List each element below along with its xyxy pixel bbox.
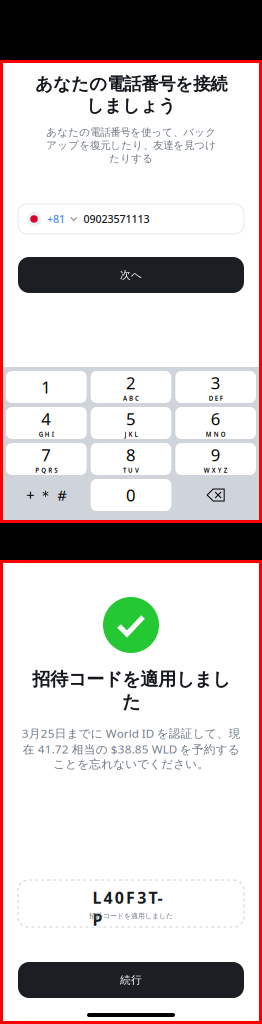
staticText: 6: [211, 407, 221, 430]
button[interactable]: 6: [175, 407, 256, 439]
staticText: 2: [126, 371, 136, 394]
button[interactable]: 9: [175, 443, 256, 475]
staticText: D E F: [209, 394, 223, 403]
staticText: 次へ: [120, 268, 142, 282]
staticText: 3月25日までに World ID を認証して、現在 41.72 相当の $38…: [21, 725, 240, 772]
staticText: 0: [126, 484, 136, 506]
staticText: 9: [211, 443, 221, 466]
staticText: A B C: [123, 394, 139, 403]
staticText: 招待コードを適用しました: [89, 911, 173, 920]
staticText: + ＊ #: [26, 485, 66, 505]
staticText: +81: [47, 212, 65, 226]
staticText: L40F3TP: [92, 887, 170, 908]
staticText: 3: [211, 371, 221, 394]
button[interactable]: 1: [6, 371, 87, 403]
button[interactable]: 次へ: [18, 257, 244, 293]
staticText: あなたの電話番号を使って、バックアップを復元したり、友達を見つけたりする: [46, 126, 216, 165]
button[interactable]: +81: [18, 204, 244, 234]
staticText: 8: [126, 443, 136, 466]
staticText: 招待コードを適用しました: [32, 668, 230, 713]
staticText: G H I: [39, 430, 54, 439]
button[interactable]: 0: [91, 479, 171, 511]
staticText: 5: [126, 407, 136, 430]
staticText: W X Y Z: [204, 466, 228, 475]
staticText: 7: [41, 443, 51, 466]
button[interactable]: + ＊ #: [6, 479, 87, 511]
staticText: J K L: [124, 430, 137, 439]
button[interactable]: 続行: [18, 962, 244, 998]
button[interactable]: 5: [91, 407, 171, 439]
staticText: M N O: [206, 430, 226, 439]
staticText: あなたの電話番号を接続しましょう: [35, 73, 227, 117]
button[interactable]: 8: [91, 443, 171, 475]
button[interactable]: 2: [91, 371, 171, 403]
staticText: 続行: [120, 973, 142, 987]
staticText: P Q R S: [35, 466, 57, 475]
staticText: 1: [41, 376, 51, 398]
button[interactable]: 7: [6, 443, 87, 475]
button[interactable]: 3: [175, 371, 256, 403]
staticText: T U V: [123, 466, 139, 475]
button[interactable]: Delete: [175, 479, 256, 511]
button[interactable]: 4: [6, 407, 87, 439]
staticText: 4: [41, 407, 51, 430]
staticText: 09023571113: [84, 212, 150, 226]
